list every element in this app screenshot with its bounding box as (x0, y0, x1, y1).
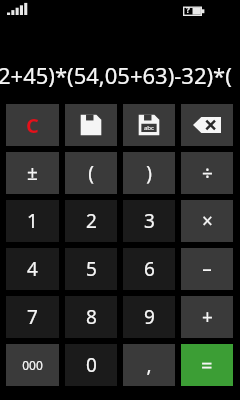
button[interactable]: ÷ (181, 152, 233, 194)
button[interactable]: Save (65, 104, 117, 146)
button[interactable]: 6 (123, 248, 175, 290)
staticText: ± (27, 160, 38, 186)
button[interactable]: ) (123, 152, 175, 194)
staticText: 7 (27, 304, 38, 330)
button[interactable]: ± (6, 152, 59, 194)
button[interactable]: ( (65, 152, 117, 194)
staticText: abc (144, 124, 154, 132)
button[interactable]: 3 (123, 200, 175, 242)
button[interactable]: 2 (65, 200, 117, 242)
staticText: – (202, 256, 212, 282)
staticText: 000 (22, 357, 43, 373)
button[interactable]: 4 (6, 248, 59, 290)
staticText: ? (186, 4, 190, 15)
staticText: + (202, 304, 213, 330)
button[interactable]: 5 (65, 248, 117, 290)
staticText: 8 (86, 304, 97, 330)
staticText: 4 (27, 256, 38, 282)
button[interactable]: × (181, 200, 233, 242)
button[interactable]: 8 (65, 296, 117, 338)
staticText: ) (146, 160, 152, 186)
button[interactable]: Clear (6, 104, 59, 146)
button[interactable]: + (181, 296, 233, 338)
staticText: 2 (86, 208, 97, 234)
button[interactable]: 0 (65, 344, 117, 386)
button[interactable]: – (181, 248, 233, 290)
button[interactable]: Backspace (181, 104, 233, 146)
staticText: 9 (144, 304, 155, 330)
button[interactable]: 7 (6, 296, 59, 338)
button[interactable]: 9 (123, 296, 175, 338)
button[interactable]: Save as (123, 104, 175, 146)
staticText: 0 (86, 352, 97, 378)
button[interactable]: , (123, 344, 175, 386)
staticText: ÷ (202, 160, 213, 186)
staticText: 5 (86, 256, 97, 282)
staticText: 2+45)*(54,05+63)-32)*(21-6) (0, 60, 238, 90)
staticText: × (202, 208, 213, 234)
button[interactable]: 000 (6, 344, 59, 386)
button[interactable]: 1 (6, 200, 59, 242)
staticText: , (146, 352, 152, 378)
staticText: ( (88, 160, 94, 186)
staticText: = (201, 352, 213, 379)
staticText: 3 (144, 208, 155, 234)
staticText: 1 (27, 208, 38, 234)
staticText: C (26, 112, 39, 139)
button[interactable]: Equals (181, 344, 233, 386)
staticText: 6 (144, 256, 155, 282)
